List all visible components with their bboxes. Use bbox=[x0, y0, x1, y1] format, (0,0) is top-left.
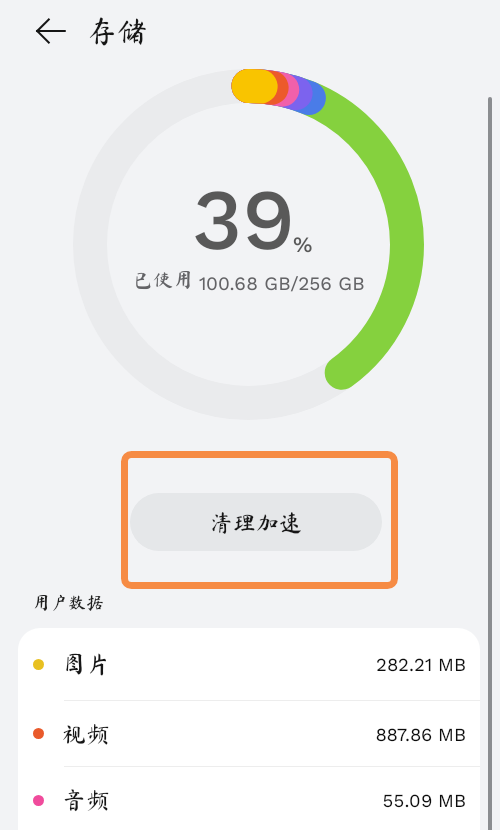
staticText: 用户数据 bbox=[32, 593, 104, 611]
button[interactable]: 音频 bbox=[18, 767, 480, 830]
button[interactable]: Back bbox=[29, 9, 73, 53]
staticText: 图片 bbox=[62, 652, 110, 676]
button[interactable]: 清理加速 bbox=[130, 493, 382, 551]
staticText: 存储 bbox=[87, 16, 147, 46]
button[interactable]: 视频 bbox=[18, 701, 480, 766]
staticText: 清理加速 bbox=[210, 511, 302, 534]
staticText: 已使用 bbox=[133, 269, 193, 289]
staticText: 音频 bbox=[62, 788, 110, 812]
staticText: 视频 bbox=[62, 722, 110, 746]
button[interactable]: 图片 bbox=[18, 628, 480, 700]
